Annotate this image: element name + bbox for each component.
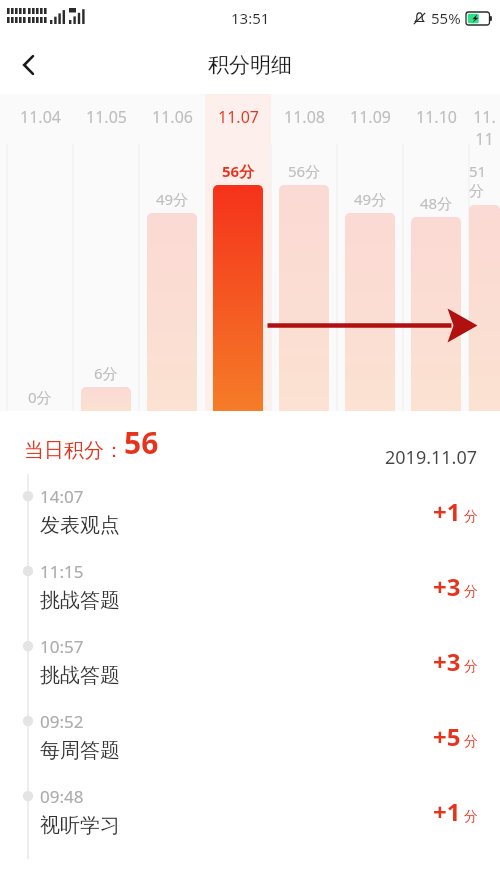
staticText: 11.10 <box>416 106 457 128</box>
staticText: 6分 <box>94 363 118 383</box>
staticText: 0分 <box>28 387 52 407</box>
button[interactable]: 11.09 <box>337 94 403 411</box>
staticText: 11.07 <box>218 106 259 128</box>
button[interactable]: 11.07 <box>205 94 271 411</box>
button[interactable]: 11:15 <box>0 549 500 624</box>
staticText: +5 <box>433 720 461 753</box>
staticText: 11.05 <box>86 106 127 128</box>
staticText: 分 <box>464 808 478 826</box>
staticText: 55% <box>431 8 461 28</box>
button[interactable]: 14:07 <box>0 474 500 549</box>
staticText: 09:52 <box>40 710 84 733</box>
staticText: +1 <box>433 495 461 528</box>
staticText: 11.06 <box>152 106 193 128</box>
button[interactable]: 11.06 <box>139 94 205 411</box>
staticText: 11.09 <box>350 106 391 128</box>
staticText: 11.08 <box>284 106 325 128</box>
staticText: 分 <box>464 733 478 751</box>
staticText: 56分 <box>222 161 255 181</box>
staticText: 51分 <box>469 161 500 201</box>
button[interactable]: 11.05 <box>73 94 139 411</box>
staticText: 11.04 <box>20 106 61 128</box>
staticText: 10:57 <box>40 635 84 658</box>
staticText: 49分 <box>156 189 189 209</box>
staticText: 14:07 <box>40 485 84 508</box>
button[interactable]: 09:48 <box>0 774 500 849</box>
button[interactable]: Back <box>0 36 58 94</box>
staticText: 49分 <box>354 189 387 209</box>
staticText: +3 <box>433 570 461 603</box>
staticText: 挑战答题 <box>40 588 120 613</box>
staticText: 当日积分： <box>24 438 124 463</box>
button[interactable]: 11.08 <box>271 94 337 411</box>
staticText: 发表观点 <box>40 513 120 538</box>
button[interactable]: 10:57 <box>0 624 500 699</box>
staticText: +1 <box>433 795 461 828</box>
staticText: 挑战答题 <box>40 663 120 688</box>
button[interactable]: 11.04 <box>7 94 73 411</box>
button[interactable]: 11.10 <box>403 94 469 411</box>
staticText: 积分明细 <box>208 52 292 78</box>
staticText: 每周答题 <box>40 738 120 763</box>
button[interactable]: 09:52 <box>0 699 500 774</box>
staticText: 09:48 <box>40 785 84 808</box>
staticText: 分 <box>464 508 478 526</box>
button[interactable]: 11.11 <box>469 94 500 411</box>
staticText: 分 <box>464 583 478 601</box>
staticText: 56 <box>124 422 159 463</box>
staticText: 13:51 <box>231 8 270 28</box>
staticText: 11.11 <box>469 106 500 150</box>
staticText: +3 <box>433 645 461 678</box>
staticText: 11:15 <box>40 560 84 583</box>
staticText: 分 <box>464 658 478 676</box>
staticText: 视听学习 <box>40 813 120 838</box>
staticText: 48分 <box>420 193 453 213</box>
staticText: 56分 <box>288 161 321 181</box>
staticText: 2019.11.07 <box>385 445 478 470</box>
